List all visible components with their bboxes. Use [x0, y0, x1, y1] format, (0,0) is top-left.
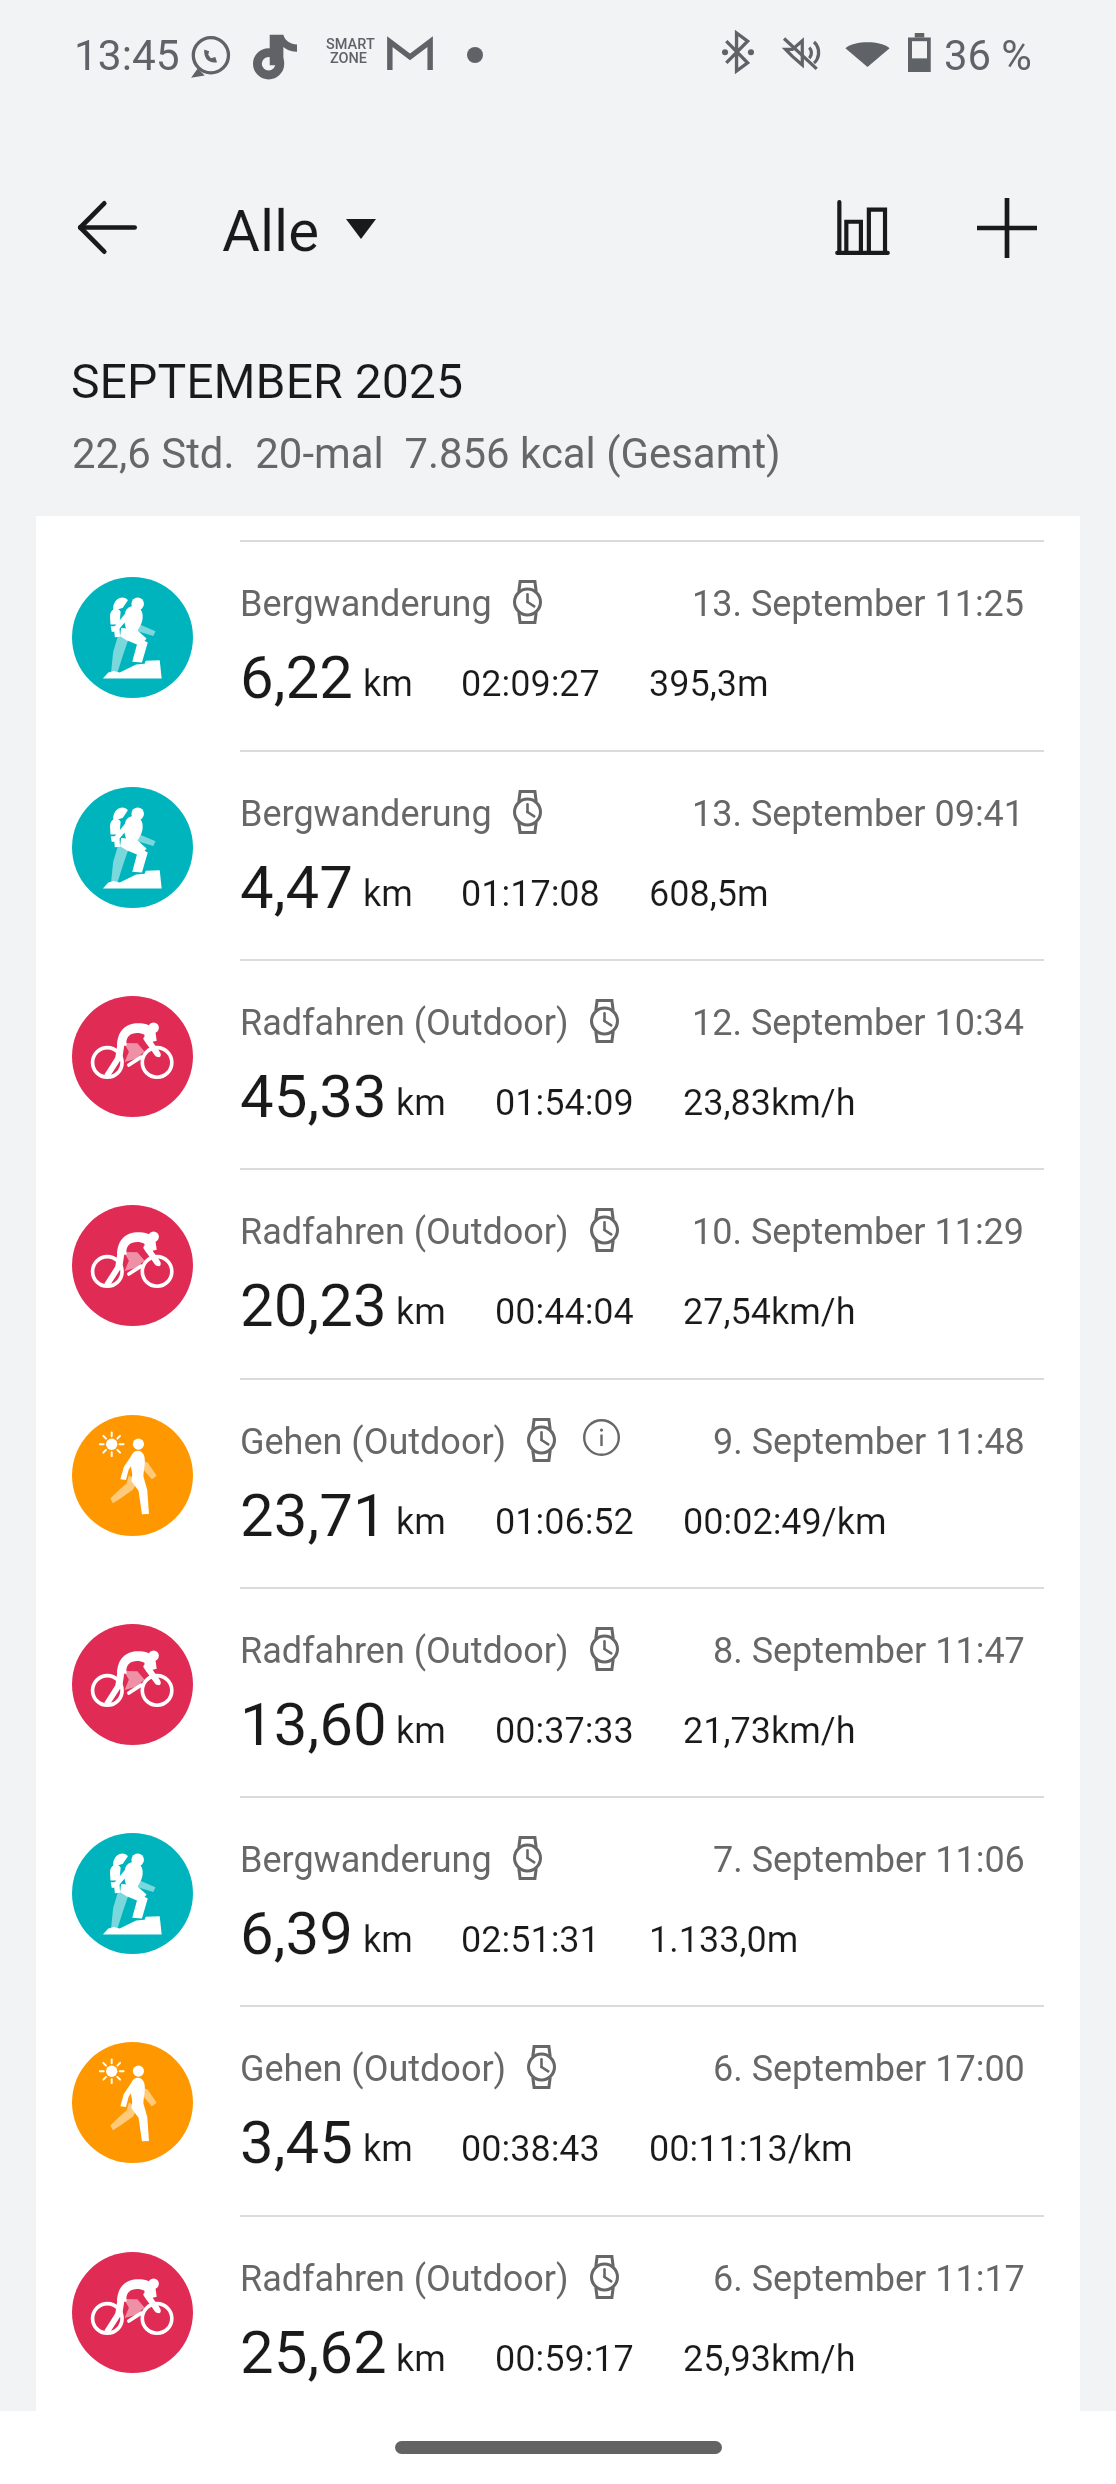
staticText: Bergwanderung — [240, 583, 492, 625]
button[interactable]: Radfahren (Outdoor) — [36, 1168, 1080, 1377]
staticText: km — [396, 1291, 446, 1333]
staticText: 12. September 10:34 — [692, 1002, 1025, 1044]
staticText: 22,6 Std. 20-mal 7.856 kcal (Gesamt) — [72, 429, 781, 478]
button[interactable]: Gehen (Outdoor) — [36, 1378, 1080, 1587]
button[interactable]: Radfahren (Outdoor) — [36, 1587, 1080, 1796]
staticText: 9. September 11:48 — [713, 1421, 1025, 1463]
staticText: 10. September 11:29 — [692, 1211, 1025, 1253]
staticText: 00:44:04 — [495, 1291, 634, 1333]
staticText: km — [396, 1710, 446, 1752]
staticText: 36 % — [944, 31, 1032, 80]
staticText: 3,45 — [240, 2107, 353, 2177]
staticText: 20,23 — [240, 1270, 387, 1340]
staticText: 00:59:17 — [495, 2338, 634, 2380]
staticText: 25,62 — [240, 2317, 387, 2387]
staticText: Radfahren (Outdoor) — [240, 1211, 569, 1253]
staticText: SEPTEMBER 2025 — [71, 353, 463, 409]
staticText: Gehen (Outdoor) — [240, 1421, 507, 1463]
staticText: 02:51:31 — [461, 1919, 600, 1961]
button[interactable]: Bergwanderung — [36, 1796, 1080, 2005]
staticText: Radfahren (Outdoor) — [240, 2258, 569, 2300]
staticText: 25,93km/h — [683, 2338, 856, 2380]
staticText: 00:11:13/km — [649, 2128, 853, 2170]
button[interactable]: Gehen (Outdoor) — [36, 2005, 1080, 2214]
staticText: 6. September 11:17 — [713, 2258, 1025, 2300]
staticText: km — [396, 2338, 446, 2380]
staticText: Bergwanderung — [240, 1839, 492, 1881]
staticText: 608,5m — [649, 873, 769, 915]
staticText: Radfahren (Outdoor) — [240, 1630, 569, 1672]
staticText: 6,22 — [240, 642, 353, 712]
button[interactable]: Radfahren (Outdoor) — [36, 2215, 1080, 2424]
button[interactable]: Alle — [206, 176, 396, 280]
staticText: km — [363, 2128, 413, 2170]
staticText: 7. September 11:06 — [713, 1839, 1025, 1881]
staticText: 6,39 — [240, 1898, 353, 1968]
staticText: 00:38:43 — [461, 2128, 600, 2170]
button[interactable]: Back — [52, 172, 164, 284]
staticText: 395,3m — [649, 663, 769, 705]
staticText: 23,71 — [240, 1480, 387, 1550]
staticText: 13:45 — [74, 31, 180, 81]
staticText: km — [363, 873, 413, 915]
staticText: Gehen (Outdoor) — [240, 2048, 507, 2090]
staticText: 01:17:08 — [461, 873, 600, 915]
staticText: 01:54:09 — [495, 1082, 634, 1124]
staticText: 23,83km/h — [683, 1082, 856, 1124]
staticText: km — [363, 663, 413, 705]
staticText: 13. September 09:41 — [692, 793, 1025, 835]
staticText: 27,54km/h — [683, 1291, 856, 1333]
staticText: 6. September 17:00 — [713, 2048, 1025, 2090]
staticText: 13,60 — [240, 1689, 387, 1759]
staticText: 21,73km/h — [683, 1710, 856, 1752]
staticText: 00:02:49/km — [683, 1501, 887, 1543]
staticText: 01:06:52 — [495, 1501, 634, 1543]
staticText: ZONE — [330, 50, 368, 67]
staticText: Radfahren (Outdoor) — [240, 1002, 569, 1044]
staticText: 45,33 — [240, 1061, 387, 1131]
staticText: Alle — [222, 197, 320, 265]
staticText: 13. September 11:25 — [692, 583, 1025, 625]
staticText: 4,47 — [240, 852, 353, 922]
staticText: 1.133,0m — [649, 1919, 799, 1961]
staticText: 8. September 11:47 — [713, 1630, 1025, 1672]
button[interactable]: Add — [951, 172, 1063, 284]
button[interactable]: Bergwanderung — [36, 750, 1080, 959]
staticText: 00:37:33 — [495, 1710, 634, 1752]
button[interactable]: Bergwanderung — [36, 540, 1080, 749]
staticText: SMART — [326, 36, 375, 53]
button[interactable]: Radfahren (Outdoor) — [36, 959, 1080, 1168]
staticText: Bergwanderung — [240, 793, 492, 835]
staticText: km — [396, 1501, 446, 1543]
staticText: 02:09:27 — [461, 663, 600, 705]
staticText: km — [396, 1082, 446, 1124]
staticText: km — [363, 1919, 413, 1961]
button[interactable]: Statistics — [807, 172, 919, 284]
